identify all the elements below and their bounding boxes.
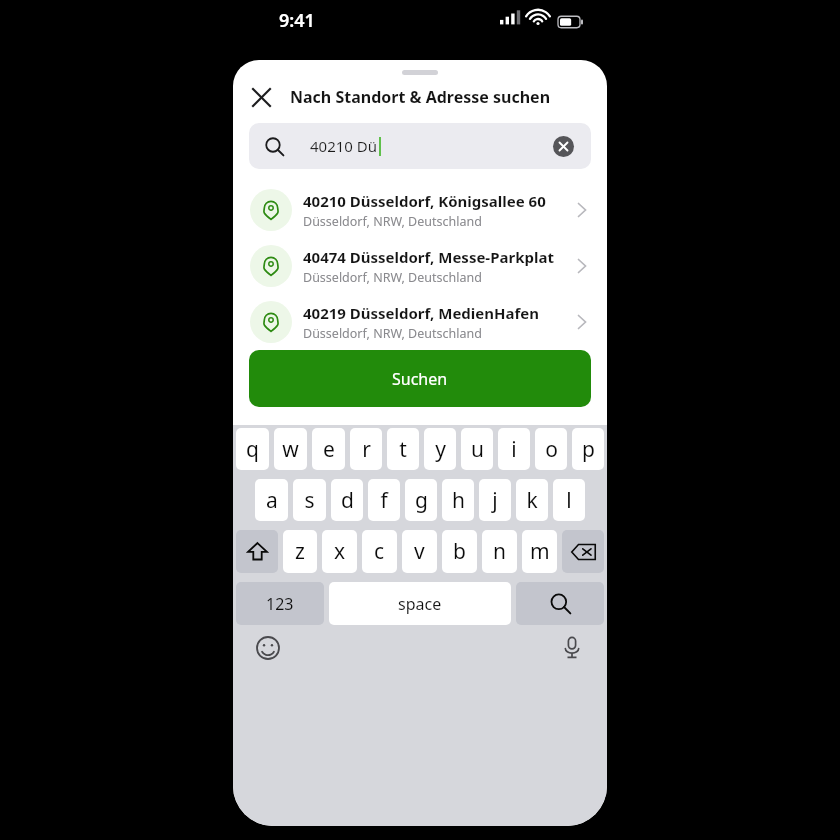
staticText: d: [341, 486, 354, 515]
staticText: t: [399, 435, 407, 464]
staticText: j: [492, 486, 498, 515]
button[interactable]: g: [405, 479, 437, 521]
staticText: 40474 Düsseldorf, Messe-Parkplat: [303, 247, 554, 267]
button[interactable]: u: [461, 428, 493, 470]
button[interactable]: 40219 Düsseldorf, MedienHafen: [233, 294, 607, 350]
button[interactable]: Clear text: [548, 131, 578, 161]
staticText: 40210 Düsseldorf, Königsallee 60: [303, 191, 546, 211]
button[interactable]: w: [274, 428, 307, 470]
button[interactable]: y: [424, 428, 456, 470]
button[interactable]: e: [312, 428, 345, 470]
staticText: f: [380, 486, 388, 515]
staticText: c: [374, 537, 385, 566]
staticText: l: [566, 486, 572, 515]
staticText: Suchen: [392, 368, 448, 390]
staticText: 40210 Dü: [310, 136, 378, 156]
button[interactable]: a: [255, 479, 288, 521]
button[interactable]: t: [387, 428, 419, 470]
staticText: Nach Standort & Adresse suchen: [290, 86, 551, 108]
staticText: 123: [266, 593, 294, 615]
staticText: g: [415, 486, 428, 515]
staticText: b: [453, 537, 466, 566]
staticText: space: [398, 593, 442, 615]
button[interactable]: Emoji: [251, 631, 285, 665]
button[interactable]: Voice input: [555, 631, 589, 665]
button[interactable]: Close: [241, 77, 281, 117]
button[interactable]: c: [362, 530, 397, 573]
staticText: 9:41: [279, 8, 315, 33]
button[interactable]: 40474 Düsseldorf, Messe-Parkplat: [233, 238, 607, 294]
staticText: 40219 Düsseldorf, MedienHafen: [303, 303, 539, 323]
staticText: i: [511, 435, 517, 464]
staticText: Düsseldorf, NRW, Deutschland: [303, 213, 482, 230]
staticText: Düsseldorf, NRW, Deutschland: [303, 325, 482, 342]
button[interactable]: space: [329, 582, 511, 625]
button[interactable]: f: [368, 479, 400, 521]
staticText: a: [266, 486, 278, 515]
button[interactable]: l: [553, 479, 585, 521]
staticText: e: [323, 435, 335, 464]
button[interactable]: n: [482, 530, 517, 573]
staticText: s: [304, 486, 315, 515]
button[interactable]: 40210 Dü: [249, 123, 591, 169]
button[interactable]: z: [283, 530, 317, 573]
staticText: n: [493, 537, 506, 566]
staticText: h: [452, 486, 465, 515]
staticText: k: [526, 486, 538, 515]
staticText: x: [334, 537, 346, 566]
staticText: y: [435, 435, 446, 464]
button[interactable]: b: [442, 530, 477, 573]
button[interactable]: Search: [516, 582, 604, 625]
staticText: Düsseldorf, NRW, Deutschland: [303, 269, 482, 286]
button[interactable]: i: [498, 428, 530, 470]
button[interactable]: j: [479, 479, 511, 521]
button[interactable]: x: [322, 530, 357, 573]
button[interactable]: 123: [236, 582, 324, 625]
button[interactable]: q: [236, 428, 269, 470]
staticText: q: [246, 435, 259, 464]
staticText: m: [530, 537, 550, 566]
staticText: w: [282, 435, 299, 464]
button[interactable]: v: [402, 530, 437, 573]
button[interactable]: r: [350, 428, 382, 470]
staticText: r: [362, 435, 371, 464]
button[interactable]: Shift: [236, 530, 278, 573]
button[interactable]: Backspace: [562, 530, 604, 573]
staticText: o: [545, 435, 558, 464]
button[interactable]: h: [442, 479, 474, 521]
button[interactable]: m: [522, 530, 557, 573]
button[interactable]: d: [331, 479, 363, 521]
staticText: v: [414, 537, 425, 566]
staticText: p: [582, 435, 595, 464]
button[interactable]: p: [572, 428, 604, 470]
button[interactable]: Suchen: [249, 350, 591, 407]
button[interactable]: s: [293, 479, 326, 521]
button[interactable]: k: [516, 479, 548, 521]
button[interactable]: 40210 Düsseldorf, Königsallee 60: [233, 182, 607, 238]
staticText: u: [471, 435, 484, 464]
staticText: z: [295, 537, 305, 566]
button[interactable]: o: [535, 428, 567, 470]
